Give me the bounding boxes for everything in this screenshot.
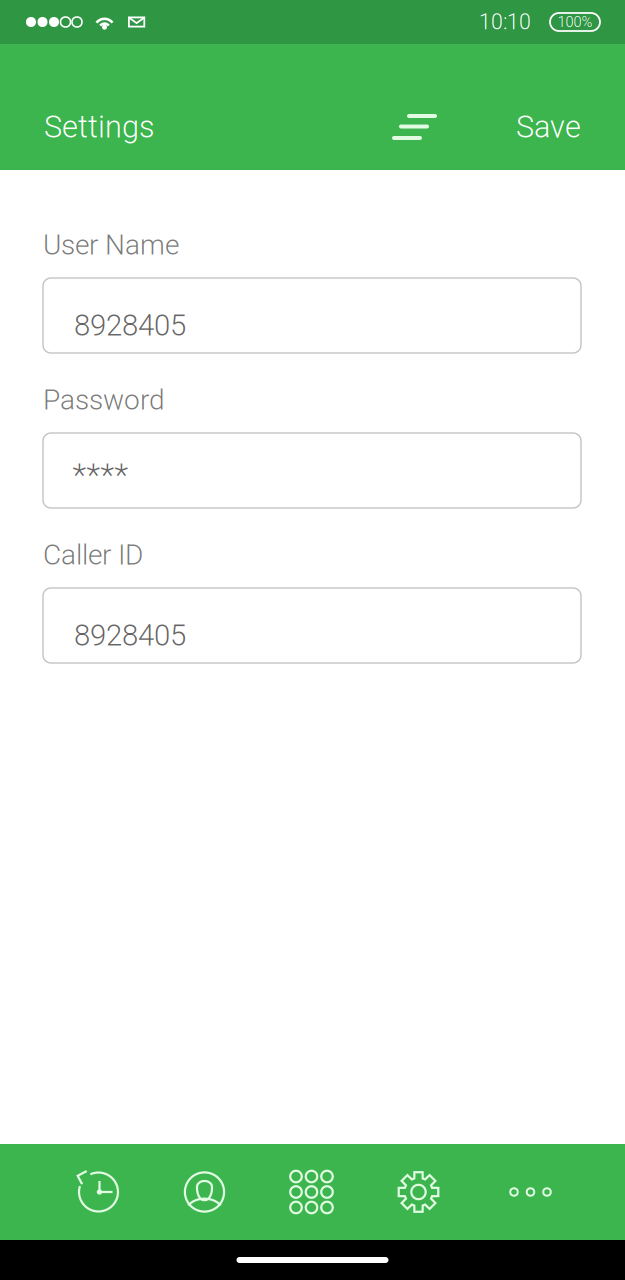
staticText: Save — [516, 109, 581, 145]
staticText: * — [100, 456, 114, 493]
staticText: 10:10 — [479, 9, 531, 34]
staticText: User Name — [43, 229, 179, 261]
button[interactable]: Settings — [365, 1144, 472, 1240]
staticText: 8928405 — [74, 618, 186, 653]
staticText: * — [86, 456, 100, 493]
button[interactable]: Contacts — [151, 1144, 258, 1240]
staticText: 8928405 — [74, 308, 186, 343]
button[interactable]: Save — [516, 104, 581, 150]
button[interactable]: Keypad — [258, 1144, 365, 1240]
button[interactable]: * — [43, 433, 581, 508]
staticText: * — [72, 456, 86, 493]
staticText: Settings — [44, 109, 155, 145]
staticText: * — [114, 456, 128, 493]
button[interactable]: 8928405 — [43, 588, 581, 663]
button[interactable]: More — [472, 1144, 579, 1240]
staticText: 100% — [557, 13, 592, 31]
staticText: Password — [43, 384, 165, 416]
button[interactable]: 8928405 — [43, 278, 581, 353]
staticText: Caller ID — [43, 539, 143, 571]
button[interactable]: History — [44, 1144, 151, 1240]
button[interactable]: Menu — [371, 104, 443, 150]
